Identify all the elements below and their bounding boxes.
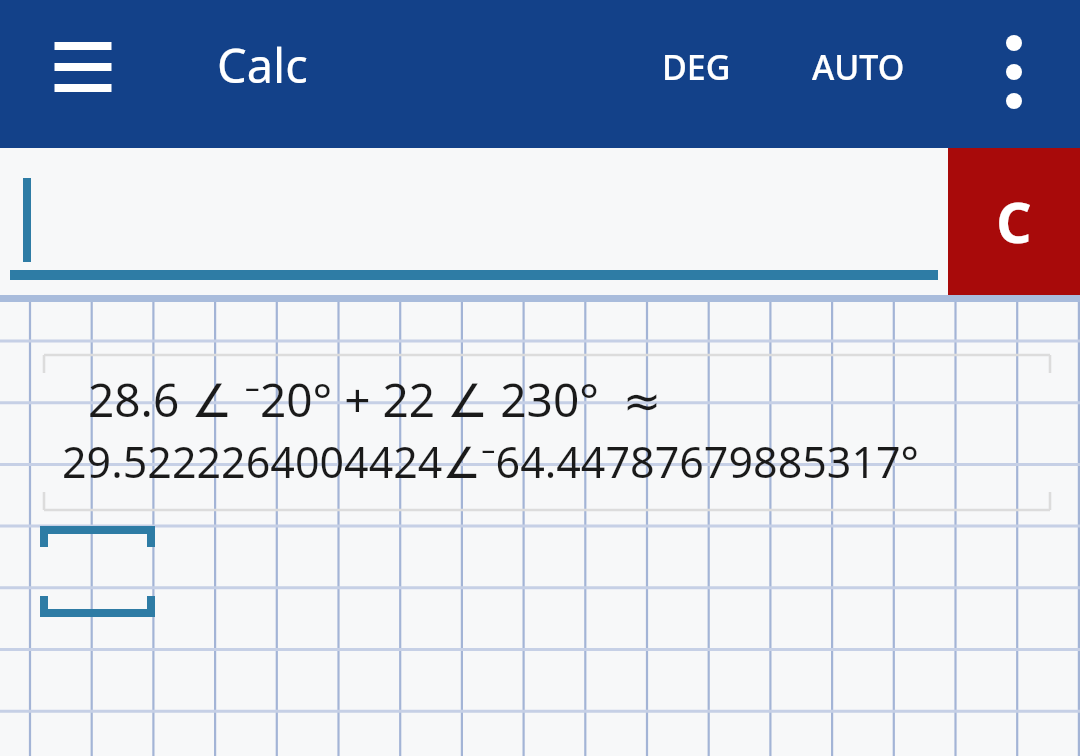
staticText: DEG xyxy=(662,44,731,90)
staticText: 29.5222264004424∠⁻64.44787679885317° xyxy=(62,432,920,491)
staticText: Calc xyxy=(217,33,308,97)
staticText: AUTO xyxy=(812,44,905,90)
staticText: 28.6 ∠ ⁻20° + 22 ∠ 230° ≈ xyxy=(88,368,662,431)
button[interactable] xyxy=(0,148,948,295)
button[interactable]: More options xyxy=(976,22,1052,122)
button[interactable]: DEG xyxy=(662,44,731,90)
button[interactable]: AUTO xyxy=(812,44,905,90)
button[interactable]: Open navigation menu xyxy=(38,20,128,110)
button[interactable]: C xyxy=(948,148,1080,295)
staticText: C xyxy=(996,184,1032,259)
